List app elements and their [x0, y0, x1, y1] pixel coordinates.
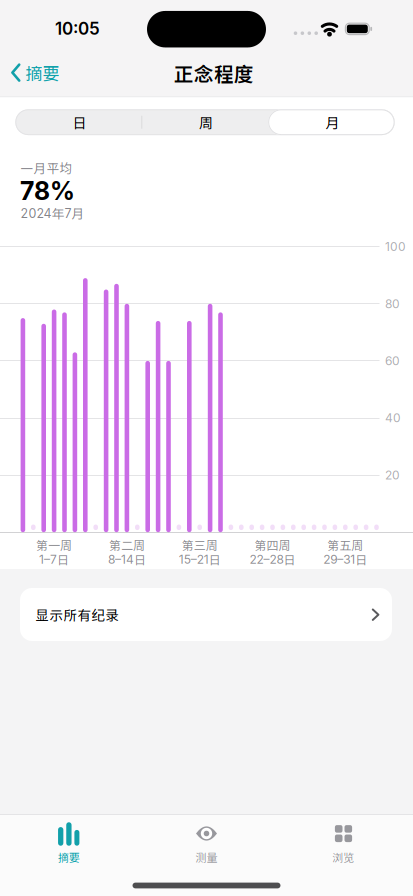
staticText: 8–14日: [108, 550, 146, 568]
staticText: 15–21日: [179, 550, 221, 568]
button[interactable]: 周: [143, 109, 269, 135]
staticText: 正念程度: [174, 59, 254, 87]
button[interactable]: 摘要: [0, 814, 137, 896]
staticText: 一月平均: [20, 159, 72, 177]
staticText: 10:05: [55, 18, 100, 39]
staticText: 第一周: [36, 536, 72, 553]
staticText: 浏览: [332, 849, 354, 865]
button[interactable]: 日: [16, 109, 142, 135]
staticText: 显示所有纪录: [35, 605, 119, 624]
button[interactable]: 测量: [138, 814, 275, 896]
staticText: 2024年7月: [20, 204, 84, 222]
staticText: 100: [385, 239, 406, 254]
staticText: 1–7日: [39, 550, 69, 568]
staticText: 40: [385, 411, 401, 425]
staticText: 第四周: [254, 536, 290, 553]
staticText: 月: [325, 112, 339, 132]
staticText: 摘要: [58, 849, 80, 865]
staticText: 第五周: [327, 536, 363, 553]
staticText: 测量: [195, 849, 217, 865]
staticText: 29–31日: [323, 550, 367, 568]
button[interactable]: 显示所有纪录: [20, 588, 392, 641]
staticText: 22–28日: [249, 550, 295, 568]
staticText: 周: [199, 112, 213, 132]
button[interactable]: 浏览: [275, 814, 412, 896]
button[interactable]: 摘要: [11, 58, 60, 88]
staticText: 80: [385, 296, 400, 311]
staticText: 第二周: [109, 536, 145, 553]
staticText: 20: [385, 468, 400, 482]
button[interactable]: 月: [269, 109, 395, 135]
staticText: 日: [72, 112, 86, 132]
staticText: 60: [385, 354, 400, 368]
staticText: 摘要: [26, 60, 60, 85]
staticText: 78%: [20, 176, 75, 206]
staticText: 第三周: [182, 536, 218, 553]
